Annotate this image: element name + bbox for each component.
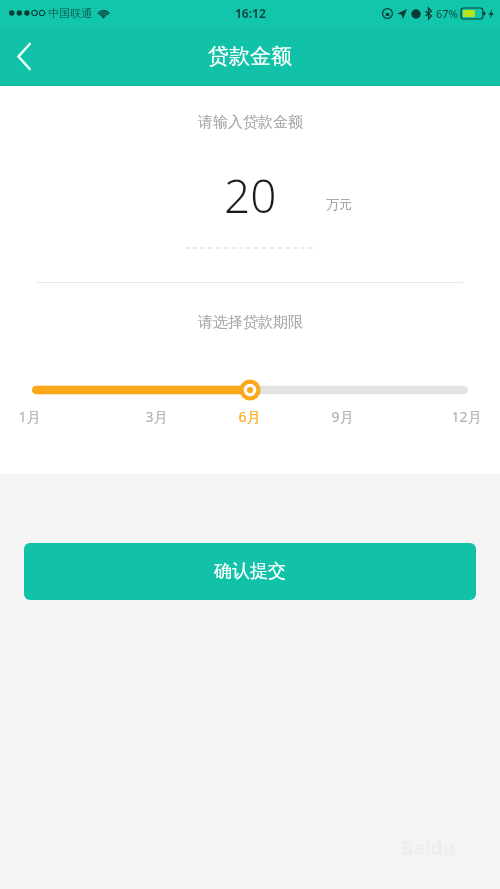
button[interactable]: Loan term slider, 6 months bbox=[0, 376, 500, 404]
button[interactable]: 确认提交 bbox=[24, 543, 476, 600]
button[interactable]: 1月 bbox=[18, 407, 110, 426]
staticText: 请输入贷款金额 bbox=[198, 113, 303, 132]
staticText: 16:12 bbox=[235, 5, 266, 21]
staticText: 12月 bbox=[451, 407, 482, 426]
staticText: 20 bbox=[224, 164, 277, 227]
staticText: 确认提交 bbox=[214, 560, 286, 583]
staticText: 请选择贷款期限 bbox=[198, 313, 303, 332]
staticText: 中国联通 bbox=[48, 6, 92, 20]
button[interactable]: 9月 bbox=[296, 407, 389, 426]
staticText: 万元 bbox=[326, 196, 352, 212]
staticText: 贷款金额 bbox=[208, 43, 292, 69]
button[interactable]: 3月 bbox=[110, 407, 203, 426]
button[interactable]: 6月 bbox=[203, 407, 296, 426]
staticText: 9月 bbox=[331, 407, 354, 426]
staticText: 1月 bbox=[18, 407, 41, 426]
button[interactable]: Back bbox=[0, 32, 48, 80]
button[interactable]: 12月 bbox=[389, 407, 482, 426]
staticText: 3月 bbox=[145, 407, 168, 426]
staticText: 67% bbox=[436, 6, 458, 21]
button[interactable]: 20 bbox=[0, 164, 500, 234]
staticText: 6月 bbox=[238, 407, 261, 426]
